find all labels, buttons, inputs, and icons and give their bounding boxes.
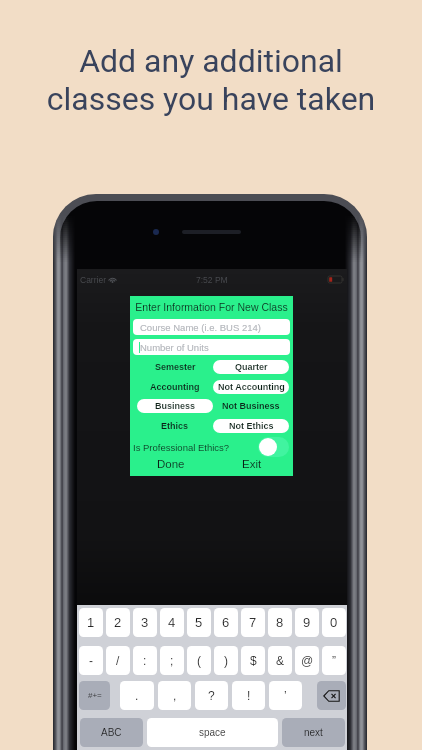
- staticText: 4: [168, 615, 176, 630]
- staticText: #+=: [88, 691, 102, 700]
- staticText: Semester: [155, 362, 196, 372]
- staticText: ;: [170, 654, 174, 667]
- button[interactable]: Not Accounting: [213, 380, 289, 394]
- staticText: 1: [87, 615, 95, 630]
- staticText: 5: [195, 615, 203, 630]
- button[interactable]: Course Name (i.e. BUS 214): [133, 319, 290, 335]
- staticText: Enter Information For New Class: [130, 301, 293, 313]
- staticText: :: [143, 654, 147, 667]
- staticText: 7: [249, 615, 257, 630]
- staticText: Not Business: [222, 401, 280, 411]
- staticText: space: [199, 727, 226, 738]
- staticText: @: [301, 654, 314, 667]
- button[interactable]: Number of Units: [133, 339, 290, 355]
- button[interactable]: .: [120, 681, 154, 710]
- button[interactable]: $: [241, 646, 265, 675]
- button[interactable]: Exit: [211, 455, 293, 473]
- staticText: Not Accounting: [218, 382, 285, 392]
- staticText: Quarter: [235, 362, 268, 372]
- staticText: Done: [157, 458, 185, 471]
- button[interactable]: Done: [130, 455, 211, 473]
- staticText: !: [247, 689, 251, 702]
- staticText: Not Ethics: [229, 421, 274, 431]
- staticText: ’: [284, 689, 287, 702]
- button[interactable]: 5: [187, 608, 211, 637]
- button[interactable]: 7: [241, 608, 265, 637]
- button[interactable]: 9: [295, 608, 319, 637]
- staticText: -: [89, 654, 93, 667]
- staticText: Business: [155, 401, 196, 411]
- button[interactable]: ’: [269, 681, 302, 710]
- staticText: Course Name (i.e. BUS 214): [140, 322, 261, 333]
- button[interactable]: Not Ethics: [213, 419, 289, 433]
- staticText: Is Professional Ethics?: [133, 442, 230, 453]
- staticText: ): [224, 654, 228, 667]
- staticText: ABC: [101, 727, 122, 738]
- staticText: 2: [114, 615, 122, 630]
- button[interactable]: Backspace: [317, 681, 346, 710]
- button[interactable]: 8: [268, 608, 292, 637]
- staticText: 8: [276, 615, 284, 630]
- button[interactable]: ;: [160, 646, 184, 675]
- staticText: /: [116, 654, 120, 667]
- button[interactable]: Not Business: [213, 399, 289, 413]
- button[interactable]: Ethics: [137, 419, 213, 433]
- staticText: Carrier: [80, 275, 106, 284]
- staticText: Number of Units: [140, 342, 209, 353]
- button[interactable]: 4: [160, 608, 184, 637]
- staticText: Accounting: [150, 382, 200, 392]
- staticText: &: [276, 654, 285, 667]
- staticText: ?: [208, 689, 215, 702]
- staticText: Ethics: [161, 421, 189, 431]
- button[interactable]: space: [147, 718, 278, 747]
- button[interactable]: #+=: [79, 681, 110, 710]
- staticText: Exit: [242, 458, 262, 471]
- button[interactable]: @: [295, 646, 319, 675]
- button[interactable]: ABC: [80, 718, 143, 747]
- button[interactable]: next: [282, 718, 345, 747]
- button[interactable]: 0: [322, 608, 346, 637]
- staticText: ”: [332, 654, 336, 667]
- staticText: 6: [222, 615, 230, 630]
- button[interactable]: ”: [322, 646, 346, 675]
- button[interactable]: Professional ethics toggle: [258, 437, 289, 457]
- staticText: (: [197, 654, 201, 667]
- button[interactable]: 1: [79, 608, 103, 637]
- button[interactable]: 6: [214, 608, 238, 637]
- button[interactable]: Accounting: [137, 380, 213, 394]
- button[interactable]: ,: [158, 681, 191, 710]
- staticText: ,: [173, 689, 177, 702]
- staticText: 0: [330, 615, 338, 630]
- button[interactable]: Business: [137, 399, 213, 413]
- button[interactable]: &: [268, 646, 292, 675]
- button[interactable]: !: [232, 681, 265, 710]
- button[interactable]: 2: [106, 608, 130, 637]
- staticText: .: [135, 689, 139, 702]
- button[interactable]: /: [106, 646, 130, 675]
- button[interactable]: 3: [133, 608, 157, 637]
- button[interactable]: ?: [195, 681, 228, 710]
- button[interactable]: -: [79, 646, 103, 675]
- button[interactable]: (: [187, 646, 211, 675]
- button[interactable]: Semester: [137, 360, 213, 374]
- staticText: 9: [303, 615, 311, 630]
- staticText: 7:52 PM: [196, 275, 228, 284]
- staticText: 3: [141, 615, 149, 630]
- staticText: $: [250, 654, 257, 667]
- button[interactable]: :: [133, 646, 157, 675]
- staticText: next: [304, 727, 323, 738]
- button[interactable]: ): [214, 646, 238, 675]
- button[interactable]: Quarter: [213, 360, 289, 374]
- staticText: Add any additional classes you have take…: [0, 42, 422, 118]
